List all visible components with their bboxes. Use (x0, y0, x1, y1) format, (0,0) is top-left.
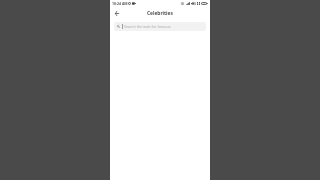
button[interactable]: Search the web for famous (114, 22, 206, 31)
button[interactable]: Back (112, 8, 122, 18)
staticText: Search the web for famous (124, 24, 171, 29)
staticText: Celebrities (147, 10, 173, 17)
staticText: 10:24 AM (112, 1, 128, 6)
